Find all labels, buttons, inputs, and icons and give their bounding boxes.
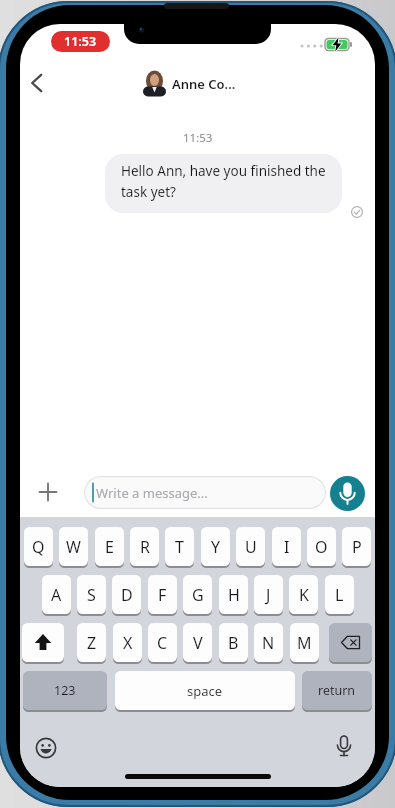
staticText: P (352, 536, 362, 558)
button[interactable]: W (59, 527, 88, 566)
staticText: Q (32, 536, 45, 558)
staticText: O (315, 536, 328, 558)
button[interactable]: X (113, 623, 142, 662)
staticText: X (123, 632, 133, 654)
button[interactable]: H (219, 575, 248, 614)
staticText: E (105, 536, 114, 558)
button[interactable]: O (307, 527, 336, 566)
button[interactable]: C (148, 623, 177, 662)
button[interactable]: Z (77, 623, 106, 662)
staticText: space (187, 682, 223, 700)
staticText: Write a message... (96, 484, 208, 502)
staticText: S (87, 584, 96, 606)
button[interactable]: E (95, 527, 124, 566)
staticText: A (51, 584, 62, 606)
staticText: M (297, 632, 312, 654)
staticText: Anne Co... (172, 75, 236, 93)
button[interactable] (34, 736, 58, 760)
staticText: 11:53 (64, 33, 97, 50)
button[interactable]: R (130, 527, 159, 566)
button[interactable] (329, 623, 372, 662)
staticText: 123 (54, 682, 76, 699)
button[interactable] (38, 482, 58, 502)
staticText: R (140, 536, 150, 558)
staticText: D (121, 584, 133, 606)
staticText: H (228, 584, 240, 606)
button[interactable]: N (254, 623, 283, 662)
button[interactable]: K (289, 575, 318, 614)
staticText: K (299, 584, 309, 606)
button[interactable]: U (236, 527, 265, 566)
staticText: L (335, 584, 344, 606)
staticText: Y (211, 536, 221, 558)
button[interactable]: T (165, 527, 194, 566)
button[interactable]: Q (24, 527, 53, 566)
button[interactable]: M (290, 623, 319, 662)
button[interactable]: S (77, 575, 106, 614)
staticText: G (192, 584, 204, 606)
staticText: Z (87, 632, 97, 654)
staticText: 11:53 (183, 130, 213, 146)
staticText: N (262, 632, 275, 654)
button[interactable]: B (219, 623, 248, 662)
button[interactable]: F (148, 575, 177, 614)
button[interactable]: Hello Ann, have you finished the task ye… (105, 154, 342, 213)
button[interactable]: space (115, 671, 295, 710)
button[interactable]: V (183, 623, 212, 662)
button[interactable]: return (302, 671, 372, 710)
staticText: return (318, 682, 356, 699)
button[interactable]: P (342, 527, 371, 566)
button[interactable]: Y (201, 527, 230, 566)
button[interactable]: 123 (23, 671, 107, 710)
button[interactable]: I (272, 527, 301, 566)
button[interactable] (26, 72, 48, 94)
button[interactable]: G (183, 575, 212, 614)
button[interactable]: D (112, 575, 141, 614)
button[interactable] (332, 734, 356, 762)
staticText: C (157, 632, 168, 654)
button[interactable]: J (254, 575, 283, 614)
button[interactable] (330, 476, 365, 511)
staticText: Hello Ann, have you finished the task ye… (121, 162, 326, 201)
staticText: W (66, 536, 81, 558)
button[interactable]: A (42, 575, 71, 614)
button[interactable]: Write a message... (84, 476, 326, 509)
button[interactable] (22, 623, 64, 662)
staticText: J (266, 584, 271, 606)
staticText: I (284, 536, 290, 558)
staticText: T (175, 536, 184, 558)
staticText: U (245, 536, 257, 558)
staticText: B (228, 632, 239, 654)
button[interactable]: L (325, 575, 354, 614)
staticText: F (158, 584, 167, 606)
staticText: V (193, 632, 203, 654)
